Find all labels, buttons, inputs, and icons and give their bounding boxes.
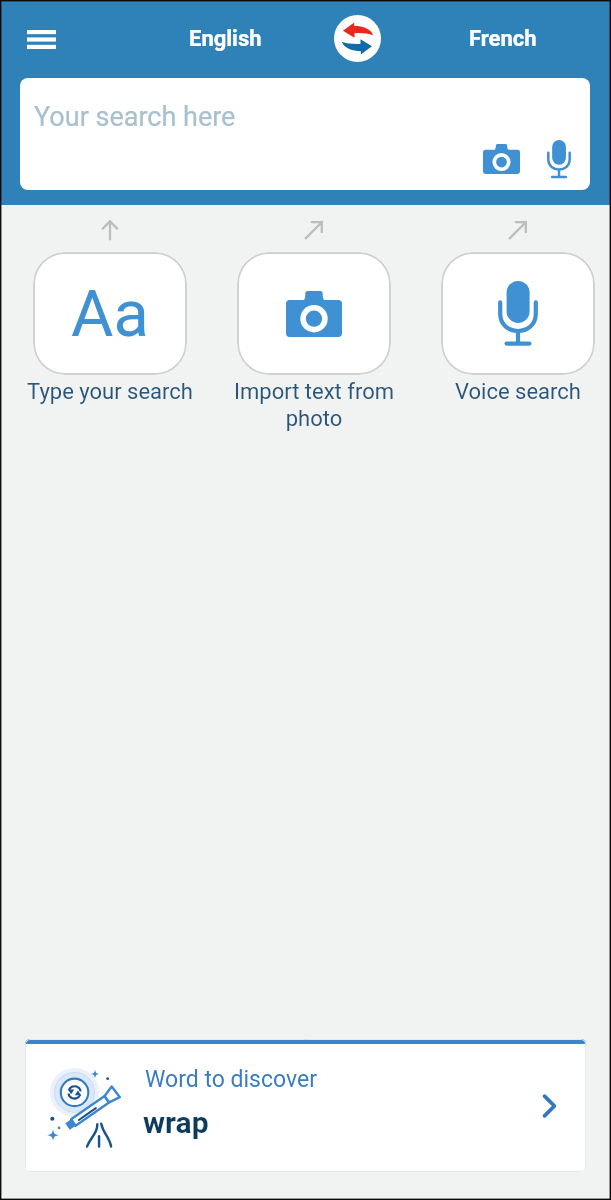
- button[interactable]: Open word: [522, 1079, 576, 1133]
- button[interactable]: Camera search: [474, 128, 528, 190]
- staticText: Type your search: [27, 379, 193, 405]
- button[interactable]: Your search here: [20, 78, 590, 190]
- button[interactable]: Voice search: [416, 220, 611, 405]
- button[interactable]: English: [173, 12, 278, 66]
- button[interactable]: Menu: [14, 12, 68, 66]
- staticText: Import text from photo: [234, 379, 394, 432]
- staticText: French: [469, 26, 537, 52]
- staticText: Your search here: [34, 101, 236, 133]
- button[interactable]: Import text from photo: [212, 220, 416, 432]
- staticText: Aa: [71, 276, 149, 352]
- button[interactable]: French: [450, 12, 555, 66]
- staticText: Voice search: [455, 379, 581, 405]
- button[interactable]: Voice search: [532, 130, 586, 188]
- button[interactable]: Aa: [8, 220, 212, 405]
- button[interactable]: Swap languages: [334, 15, 381, 62]
- staticText: English: [189, 26, 262, 52]
- staticText: Word to discover: [145, 1066, 317, 1093]
- staticText: wrap: [143, 1105, 209, 1140]
- button[interactable]: Word to discover: [25, 1039, 586, 1172]
